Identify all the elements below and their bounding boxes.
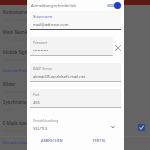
button[interactable]: Externe/Interne Bilder: [3, 68, 147, 74]
staticText: 465: [33, 100, 118, 105]
button[interactable]: Auswählen: [138, 124, 145, 131]
staticText: Passwort: [33, 40, 48, 44]
staticText: Synchronisation: [3, 99, 37, 105]
button[interactable]: Mein Name: [3, 29, 147, 42]
button[interactable]: E-Mails speichern: [3, 120, 147, 133]
button[interactable]: ABBRECHEN: [39, 135, 65, 146]
button[interactable]: Kontoname: [3, 9, 147, 22]
staticText: Nutzername: [33, 14, 53, 18]
button[interactable]: Passwort: [30, 37, 113, 57]
button[interactable]: Anmeldung erforderlich umschalten: [107, 1, 122, 10]
staticText: Von dem Server laden: [3, 89, 43, 94]
button[interactable]: IMAP-Server: [30, 63, 121, 83]
staticText: Mein Name: [3, 29, 28, 35]
button[interactable]: Bilder: [3, 81, 147, 94]
button[interactable]: Benachrichtigungen: [3, 140, 147, 146]
staticText: Benachrichtigungen: [3, 140, 44, 146]
staticText: Mobile Signatur: [3, 49, 37, 55]
staticText: Bilder: [3, 81, 16, 87]
staticText: Kontoname: [3, 9, 28, 15]
button[interactable]: Mobile Signatur: [3, 49, 147, 62]
staticText: Gesendet von meinem: [3, 57, 44, 62]
staticText: ••••••••••: [33, 48, 110, 53]
button[interactable]: Verschlüsselung: [30, 115, 121, 135]
staticText: Verschlüsselung: [33, 118, 59, 122]
staticText: Port: [33, 92, 40, 96]
button[interactable]: Nutzername: [30, 11, 121, 31]
staticText: mail@adresse.com: [3, 17, 37, 22]
staticText: IMAP-Server: [33, 66, 53, 70]
staticText: E-Mails speichern: [3, 120, 40, 126]
button[interactable]: Port: [30, 89, 121, 109]
staticText: Anmeldung erforderlich: [31, 3, 77, 8]
staticText: SSL/TLS: [33, 126, 118, 131]
staticText: E-Mails dieses Kontos: [3, 128, 42, 133]
button[interactable]: Synchronisation: [3, 99, 147, 112]
staticText: akmail05.worldsoft-mail.net: [33, 74, 118, 79]
button[interactable]: Passwort löschen: [114, 44, 122, 52]
staticText: mail@adresse.com: [33, 22, 118, 27]
button[interactable]: Verschlüsselung wählen: [110, 124, 116, 130]
staticText: ABBRECHEN: [41, 138, 63, 143]
button[interactable]: FERTIG: [91, 135, 108, 146]
staticText: FERTIG: [93, 138, 106, 143]
staticText: Hans Mustermann: [3, 37, 37, 42]
staticText: Externe/Interne Bilder: [3, 68, 48, 74]
